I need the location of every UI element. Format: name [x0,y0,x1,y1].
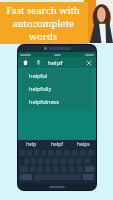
button[interactable]: helpfully [29,82,92,95]
button[interactable]: helpf [44,140,70,149]
staticText: helpfully [29,85,52,92]
staticText: helpfulness [29,98,59,105]
button[interactable]: Home gesture bar [49,186,65,188]
button[interactable]: helps [70,140,96,149]
staticText: helpful [29,72,48,79]
button[interactable]: helpful [29,69,92,82]
button[interactable]: Voice search [34,58,43,67]
staticText: helpf [51,141,63,148]
staticText: help [26,141,37,148]
staticText: helpf [48,59,84,67]
staticText: helps [77,141,90,148]
button[interactable]: helpfulness [29,95,92,108]
button[interactable]: Clear [84,58,93,67]
button[interactable]: Home [21,58,30,67]
button[interactable]: help [18,140,44,149]
staticText: Fast search with autocomplete words [4,4,82,43]
